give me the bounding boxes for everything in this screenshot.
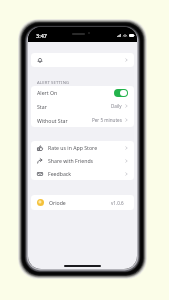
staticText: 3:47 <box>36 32 47 39</box>
staticText: Feedback <box>48 170 72 177</box>
staticText: ALERT SETTING <box>37 80 70 86</box>
staticText: Alert On <box>37 89 58 96</box>
button[interactable]: Alert On <box>31 86 134 99</box>
staticText: Star <box>37 103 47 110</box>
staticText: v1.0.6 <box>111 200 124 206</box>
staticText: Without Star <box>37 117 68 124</box>
staticText: Rate us in App Store <box>48 144 98 151</box>
button[interactable]: Feedback <box>31 167 134 180</box>
button[interactable]: Without Star <box>31 113 134 127</box>
button[interactable]: Notifications <box>31 53 134 67</box>
button[interactable]: Share with Friends <box>31 154 134 167</box>
staticText: Daily <box>111 103 122 109</box>
staticText: Share with Friends <box>48 157 94 164</box>
staticText: Per 5 minutes <box>92 117 122 123</box>
button[interactable]: Star <box>31 99 134 113</box>
staticText: Oriode <box>49 199 66 206</box>
button[interactable]: Rate us in App Store <box>31 141 134 154</box>
button[interactable]: Oriode <box>31 195 134 210</box>
